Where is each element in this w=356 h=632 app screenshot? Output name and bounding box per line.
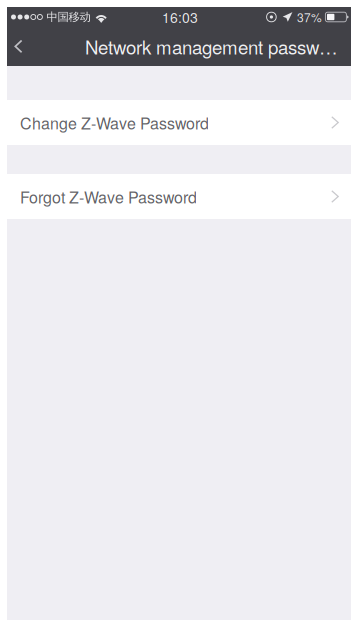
button[interactable]: Back — [14, 27, 38, 66]
staticText: 中国移动 — [46, 10, 90, 24]
staticText: Change Z-Wave Password — [20, 111, 209, 134]
staticText: 37% — [297, 8, 322, 26]
staticText: Network management passw… — [85, 33, 338, 60]
button[interactable]: Forgot Z-Wave Password — [7, 174, 351, 219]
button[interactable]: Change Z-Wave Password — [7, 100, 351, 145]
staticText: Forgot Z-Wave Password — [20, 185, 197, 208]
staticText: 16:03 — [162, 7, 198, 27]
